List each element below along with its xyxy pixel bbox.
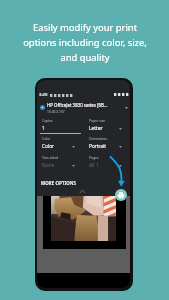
button[interactable]: Pages (87, 155, 128, 169)
staticText: Orientation (89, 136, 108, 141)
button[interactable]: Print (115, 189, 127, 201)
button[interactable]: Copies (40, 118, 81, 134)
staticText: Letter (89, 125, 103, 132)
staticText: 10.40.3.167 (47, 109, 65, 113)
staticText: All 1 (89, 162, 99, 169)
button[interactable]: Color (40, 136, 81, 150)
button[interactable]: HP OfficeJet 3830 series [6B... (37, 101, 130, 114)
staticText: Color (42, 143, 55, 150)
staticText: Pages (89, 155, 99, 160)
staticText: Copies (42, 118, 53, 123)
button[interactable]: MORE OPTIONS (41, 180, 77, 186)
staticText: HP OfficeJet 3830 series [6B... (47, 102, 108, 108)
staticText: Easily modify your print options includi… (23, 21, 147, 63)
staticText: Color (42, 136, 51, 141)
button[interactable]: Orientation (87, 136, 128, 150)
staticText: MORE OPTIONS (41, 180, 77, 186)
staticText: 1 (42, 125, 45, 132)
button[interactable]: Paper size (87, 118, 128, 132)
staticText: Two-sided (42, 155, 59, 160)
button[interactable]: Two-sided (40, 155, 81, 169)
staticText: Paper size (89, 118, 106, 123)
staticText: Portrait (89, 143, 107, 150)
staticText: 3:20 (39, 92, 48, 98)
staticText: None (42, 162, 55, 169)
